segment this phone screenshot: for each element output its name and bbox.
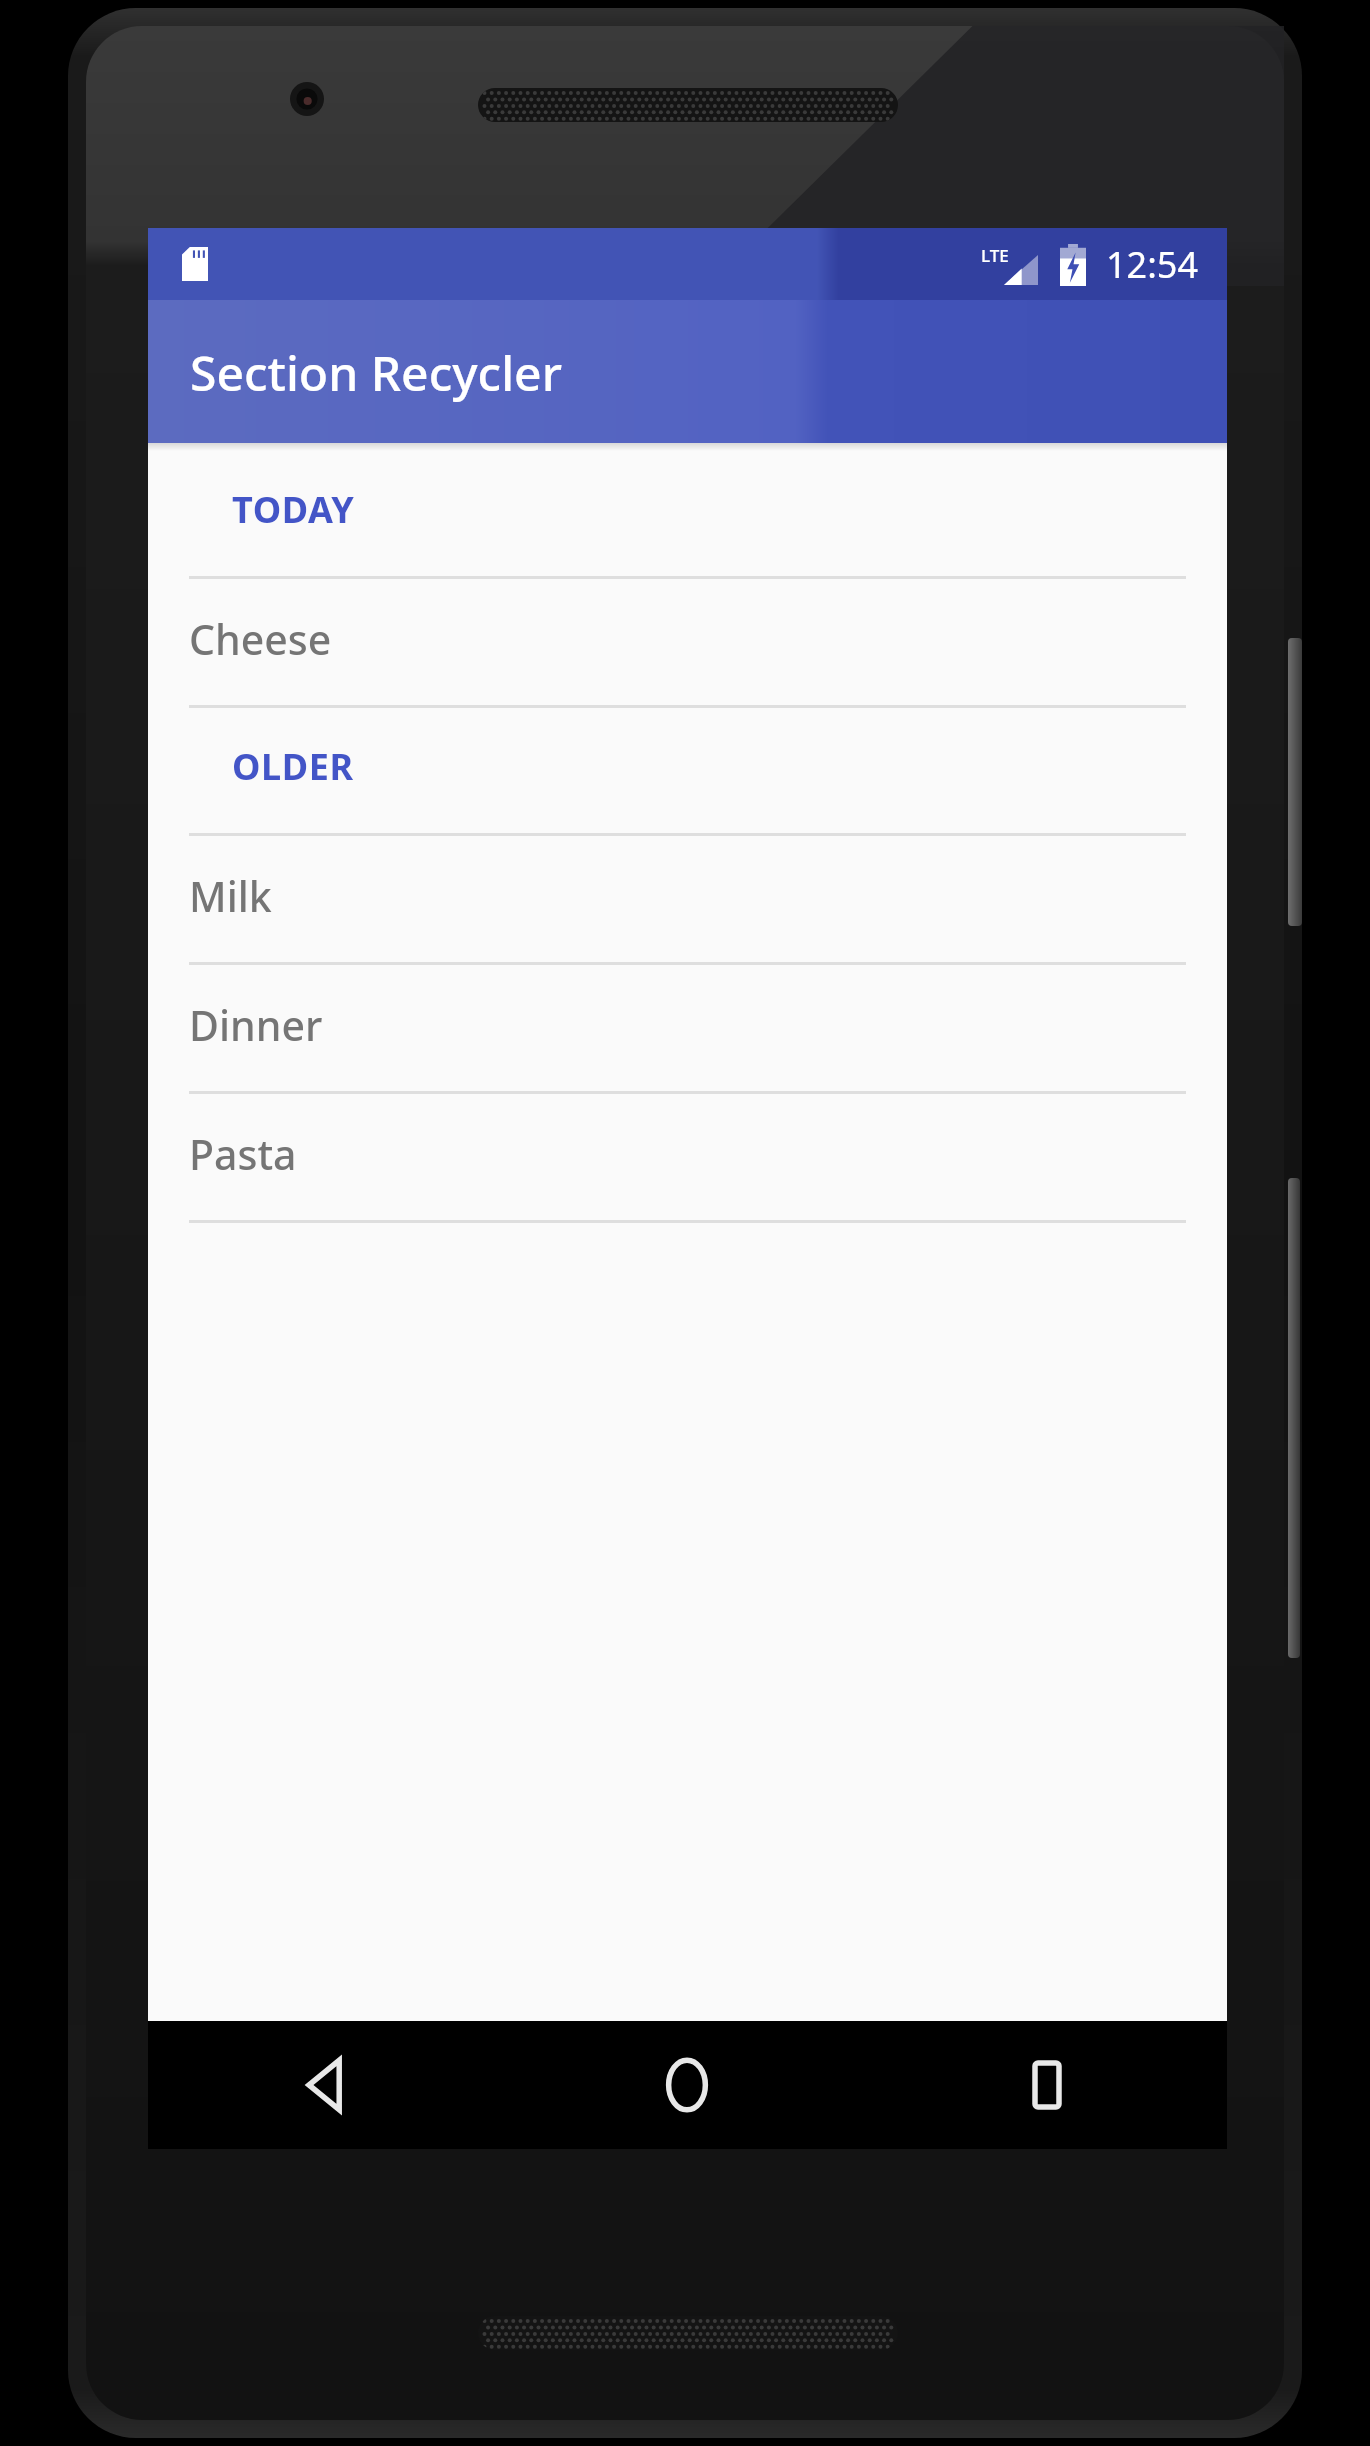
button[interactable]: Back	[148, 2021, 507, 2149]
button[interactable]: Dinner	[148, 965, 1227, 1094]
staticText: OLDER	[232, 742, 354, 791]
button[interactable]: Pasta	[148, 1094, 1227, 1223]
button[interactable]: Cheese	[148, 579, 1227, 708]
staticText: TODAY	[232, 485, 355, 534]
button[interactable]: Recent apps	[867, 2021, 1227, 2149]
button[interactable]: Section Recycler	[148, 300, 1227, 443]
staticText: Pasta	[189, 1126, 297, 1182]
staticText: Milk	[189, 868, 272, 924]
staticText: Dinner	[189, 997, 323, 1053]
button[interactable]: OLDER	[148, 708, 1227, 836]
button[interactable]: TODAY	[148, 451, 1227, 579]
staticText: LTE	[981, 244, 1009, 267]
button[interactable]: Milk	[148, 836, 1227, 965]
staticText: 12:54	[1106, 240, 1199, 289]
button[interactable]: Home	[507, 2021, 867, 2149]
staticText: Cheese	[189, 611, 332, 667]
staticText: Section Recycler	[190, 340, 562, 405]
